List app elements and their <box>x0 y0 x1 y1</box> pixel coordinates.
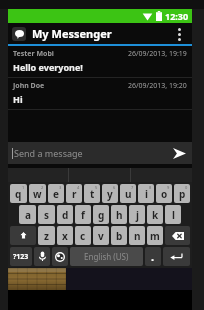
staticText: x <box>62 229 68 243</box>
button[interactable]: k <box>147 205 163 224</box>
staticText: 5 <box>95 185 98 190</box>
staticText: 7 <box>131 185 134 190</box>
button[interactable]: Backspace <box>165 226 190 245</box>
button[interactable]: q <box>10 184 27 203</box>
button[interactable]: b <box>111 226 127 245</box>
staticText: s <box>44 208 50 222</box>
staticText: Hello everyone! <box>13 61 83 73</box>
staticText: g <box>98 208 105 222</box>
button[interactable]: l <box>165 205 181 224</box>
staticText: 26/09/2013, 19:19 <box>128 49 187 59</box>
button[interactable]: w <box>29 184 46 203</box>
staticText: 1 <box>22 185 25 190</box>
staticText: i <box>145 187 148 201</box>
button[interactable]: o <box>156 184 172 203</box>
button[interactable]: Send a message <box>8 142 192 164</box>
button[interactable]: Voice input <box>34 247 50 266</box>
button[interactable]: v <box>93 226 109 245</box>
staticText: y <box>107 187 113 201</box>
staticText: j <box>136 208 139 222</box>
button[interactable]: g <box>93 205 109 224</box>
button[interactable]: p <box>174 184 190 203</box>
staticText: 3 <box>59 185 62 190</box>
button[interactable]: u <box>120 184 136 203</box>
button[interactable]: Shift <box>10 226 36 245</box>
staticText: z <box>44 229 49 243</box>
staticText: John Doe <box>13 81 45 91</box>
button[interactable]: d <box>57 205 73 224</box>
button[interactable]: n <box>129 226 145 245</box>
staticText: d <box>62 208 69 222</box>
staticText: o <box>161 187 168 201</box>
button[interactable]: John Doe <box>8 78 192 109</box>
staticText: n <box>134 229 141 243</box>
button[interactable]: y <box>102 184 118 203</box>
staticText: Tester Mobi <box>13 49 54 59</box>
staticText: u <box>125 187 132 201</box>
button[interactable]: t <box>84 184 100 203</box>
button[interactable]: m <box>147 226 163 245</box>
staticText: w <box>33 187 42 201</box>
staticText: 0 <box>185 185 188 190</box>
staticText: e <box>53 187 59 201</box>
button[interactable]: f <box>75 205 91 224</box>
button[interactable]: a <box>19 205 36 224</box>
staticText: Hi <box>13 93 23 105</box>
button[interactable]: s <box>38 205 55 224</box>
staticText: 8 <box>149 185 152 190</box>
staticText: 9 <box>167 185 170 190</box>
button[interactable]: . <box>145 247 161 266</box>
staticText: m <box>150 229 160 243</box>
staticText: Send a message <box>14 147 83 159</box>
button[interactable]: x <box>57 226 73 245</box>
staticText: a <box>25 208 31 222</box>
staticText: 26/09/2013, 19:20 <box>128 81 187 91</box>
button[interactable]: ?123 <box>10 247 32 266</box>
staticText: f <box>81 208 85 222</box>
staticText: r <box>72 187 77 201</box>
button[interactable]: Tester Mobi <box>8 46 192 77</box>
button[interactable]: h <box>111 205 127 224</box>
staticText: My Messenger <box>32 26 112 41</box>
staticText: q <box>15 187 22 201</box>
staticText: English (US) <box>84 251 129 262</box>
button[interactable]: More options <box>170 25 188 43</box>
staticText: h <box>116 208 123 222</box>
staticText: 2 <box>41 185 44 190</box>
staticText: 12:30 <box>165 10 189 22</box>
button[interactable]: r <box>66 184 82 203</box>
button[interactable]: c <box>75 226 91 245</box>
button[interactable]: e <box>48 184 64 203</box>
staticText: v <box>98 229 104 243</box>
button[interactable]: Enter <box>163 247 190 266</box>
button[interactable]: Send <box>170 144 188 162</box>
staticText: k <box>152 208 159 222</box>
button[interactable]: j <box>129 205 145 224</box>
staticText: b <box>116 229 123 243</box>
button[interactable]: Change language <box>52 247 68 266</box>
staticText: ?123 <box>13 252 29 262</box>
staticText: t <box>90 187 95 201</box>
staticText: 6 <box>113 185 116 190</box>
staticText: l <box>172 208 175 222</box>
button[interactable]: English (US) <box>70 247 143 266</box>
staticText: . <box>151 249 155 264</box>
staticText: 4 <box>77 185 80 190</box>
button[interactable]: i <box>138 184 154 203</box>
staticText: p <box>179 187 186 201</box>
button[interactable]: z <box>38 226 55 245</box>
staticText: c <box>80 229 86 243</box>
